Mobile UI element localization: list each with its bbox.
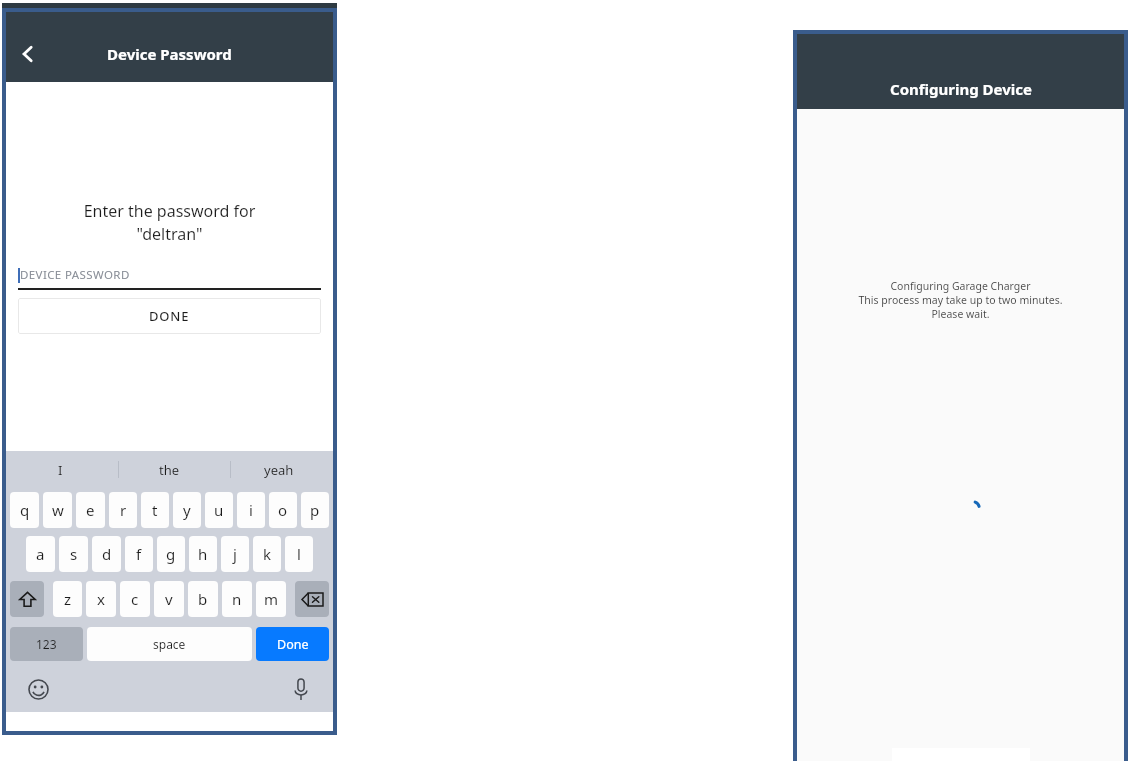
staticText: y — [183, 500, 191, 520]
button[interactable]: the — [115, 451, 224, 488]
staticText: Device Password — [107, 44, 232, 64]
button[interactable]: p — [301, 492, 329, 528]
button[interactable]: Voice input — [287, 675, 315, 703]
button[interactable]: n — [222, 581, 252, 617]
staticText: e — [86, 500, 95, 520]
staticText: Configuring Garage Charger This process … — [807, 279, 1114, 321]
button[interactable]: u — [205, 492, 233, 528]
button[interactable]: q — [10, 492, 39, 528]
button[interactable]: k — [253, 536, 281, 572]
staticText: h — [198, 544, 208, 564]
button[interactable]: Back — [6, 32, 50, 76]
staticText: u — [214, 500, 224, 520]
button[interactable]: s — [59, 536, 88, 572]
staticText: g — [166, 544, 176, 564]
staticText: r — [120, 500, 127, 520]
staticText: n — [232, 589, 242, 609]
staticText: x — [97, 589, 105, 609]
staticText: space — [153, 636, 186, 652]
button[interactable]: Shift — [10, 581, 44, 617]
staticText: p — [310, 500, 320, 520]
button[interactable]: Done — [256, 627, 329, 661]
staticText: v — [165, 589, 173, 609]
button[interactable]: z — [53, 581, 82, 617]
button[interactable]: y — [173, 492, 201, 528]
button[interactable]: 123 — [10, 627, 83, 661]
button[interactable]: a — [26, 536, 55, 572]
button[interactable]: DEVICE PASSWORD — [18, 262, 321, 288]
button[interactable]: l — [285, 536, 313, 572]
button[interactable]: d — [92, 536, 121, 572]
staticText: l — [297, 544, 301, 564]
staticText: o — [278, 500, 288, 520]
staticText: DONE — [149, 307, 190, 325]
button[interactable]: g — [157, 536, 185, 572]
staticText: q — [20, 500, 30, 520]
button[interactable]: space — [87, 627, 252, 661]
staticText: f — [136, 544, 142, 564]
staticText: d — [102, 544, 112, 564]
staticText: DEVICE PASSWORD — [20, 267, 130, 283]
button[interactable]: I — [6, 451, 115, 488]
staticText: j — [233, 544, 237, 564]
button[interactable]: o — [269, 492, 297, 528]
button[interactable]: h — [189, 536, 217, 572]
button[interactable]: r — [109, 492, 137, 528]
button[interactable]: v — [154, 581, 184, 617]
staticText: Done — [277, 636, 309, 653]
button[interactable]: x — [86, 581, 116, 617]
staticText: t — [152, 500, 158, 520]
button[interactable]: w — [43, 492, 72, 528]
staticText: Configuring Device — [890, 79, 1032, 99]
button[interactable]: m — [256, 581, 286, 617]
staticText: b — [198, 589, 208, 609]
button[interactable]: t — [141, 492, 169, 528]
staticText: z — [64, 589, 72, 609]
staticText: a — [36, 544, 45, 564]
staticText: k — [263, 544, 272, 564]
staticText: the — [159, 461, 180, 479]
staticText: w — [52, 500, 64, 520]
staticText: Enter the password for "deltran" — [24, 200, 315, 245]
button[interactable]: b — [188, 581, 218, 617]
staticText: m — [264, 589, 279, 609]
staticText: I — [58, 461, 63, 479]
staticText: c — [131, 589, 139, 609]
button[interactable]: j — [221, 536, 249, 572]
button[interactable]: DONE — [18, 298, 321, 334]
button[interactable]: e — [76, 492, 105, 528]
button[interactable]: c — [120, 581, 150, 617]
button[interactable]: Backspace — [295, 581, 329, 617]
staticText: s — [70, 544, 78, 564]
staticText: i — [249, 500, 253, 520]
button[interactable]: f — [125, 536, 153, 572]
button[interactable]: i — [237, 492, 265, 528]
button[interactable]: yeah — [224, 451, 333, 488]
staticText: yeah — [264, 461, 294, 479]
button[interactable]: Emoji — [24, 675, 52, 703]
staticText: 123 — [36, 636, 57, 652]
